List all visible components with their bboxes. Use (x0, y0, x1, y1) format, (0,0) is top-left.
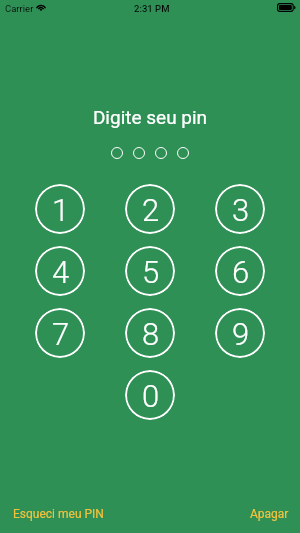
button[interactable]: 1 (35, 184, 85, 234)
staticText: 4 (52, 254, 70, 290)
staticText: Carrier (5, 3, 34, 14)
staticText: 5 (142, 254, 160, 290)
other: Battery full (277, 3, 296, 12)
staticText: Apagar (250, 507, 289, 521)
staticText: 2 (142, 192, 160, 228)
button[interactable]: 8 (125, 308, 175, 358)
button[interactable]: Apagar (250, 505, 289, 523)
button[interactable]: 5 (125, 246, 175, 296)
button[interactable]: 9 (215, 308, 265, 358)
button[interactable]: 7 (35, 308, 85, 358)
staticText: 9 (232, 316, 250, 352)
button[interactable]: 2 (125, 184, 175, 234)
button[interactable]: 6 (215, 246, 265, 296)
button[interactable]: 4 (35, 246, 85, 296)
staticText: 1 (52, 192, 70, 228)
staticText: Esqueci meu PIN (13, 507, 104, 521)
other: Wi-Fi signal (36, 3, 46, 11)
staticText: 2:31 PM (134, 3, 170, 14)
button[interactable]: Esqueci meu PIN (13, 505, 104, 523)
staticText: Digite seu pin (0, 106, 300, 128)
staticText: 3 (232, 192, 250, 228)
button[interactable]: 3 (215, 184, 265, 234)
staticText: 0 (142, 378, 160, 414)
button[interactable]: 0 (125, 370, 175, 420)
staticText: 6 (232, 254, 250, 290)
staticText: 8 (142, 316, 160, 352)
staticText: 7 (52, 316, 70, 352)
